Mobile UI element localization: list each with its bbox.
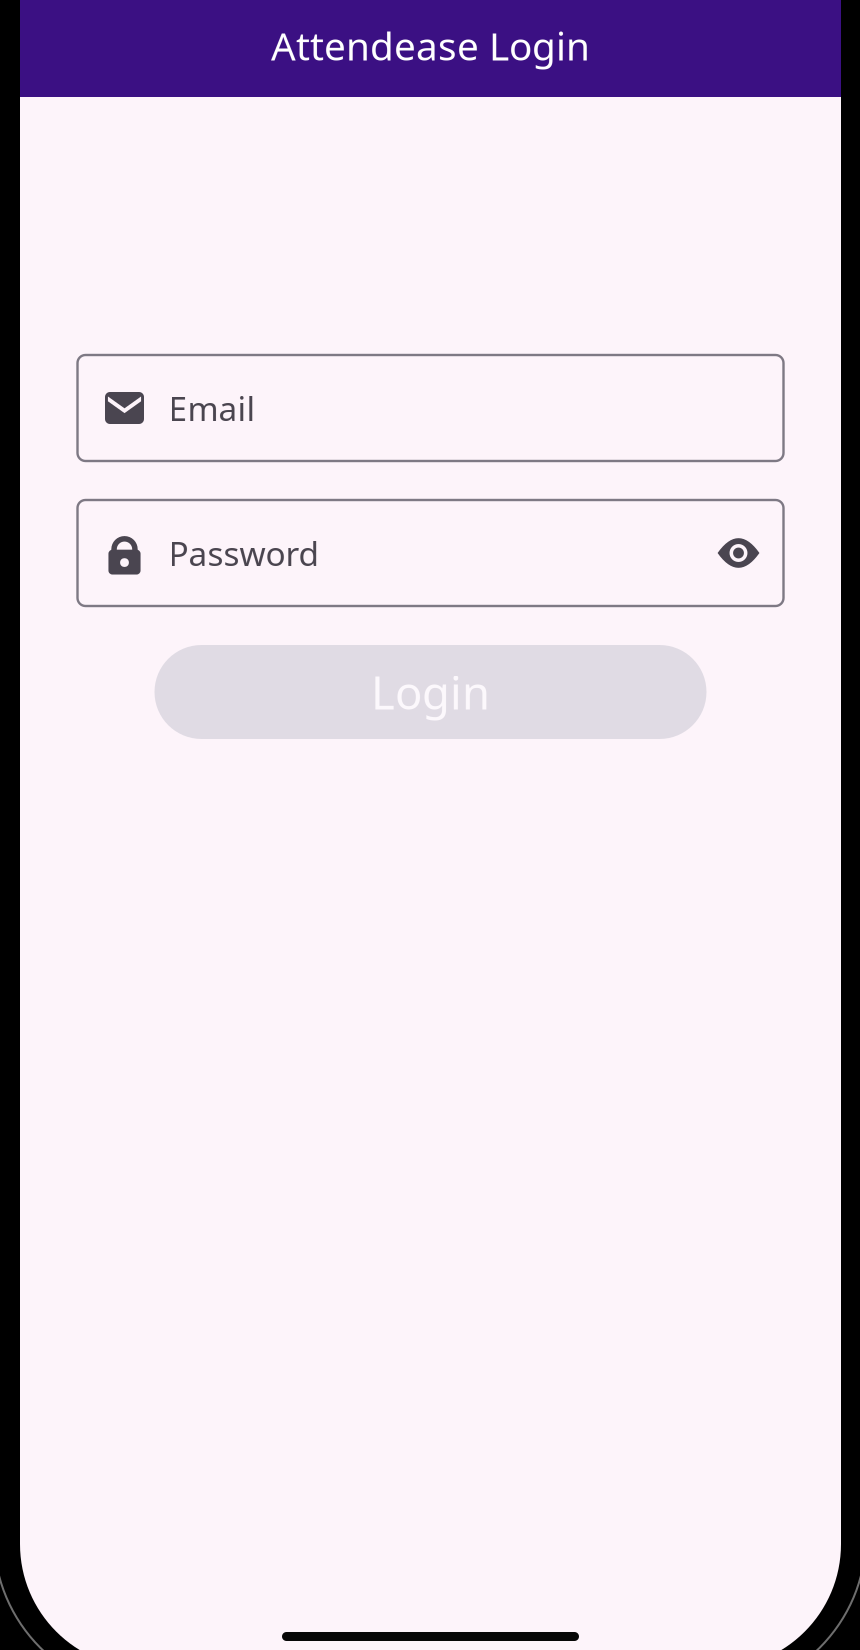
- button[interactable]: Login: [154, 645, 706, 739]
- button[interactable]: Email: [77, 355, 783, 461]
- button[interactable]: Password: [77, 500, 783, 606]
- staticText: Password: [168, 531, 319, 575]
- staticText: Email: [168, 386, 255, 430]
- staticText: Attendease Login: [271, 20, 590, 71]
- button[interactable]: Show password: [715, 530, 761, 576]
- staticText: Login: [371, 662, 490, 722]
